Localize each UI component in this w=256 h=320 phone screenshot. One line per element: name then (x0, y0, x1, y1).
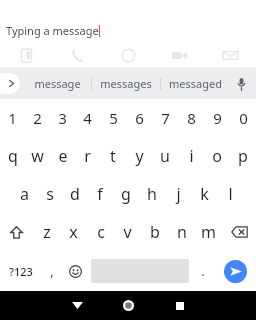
staticText: v (123, 221, 132, 243)
staticText: t (110, 145, 116, 167)
button[interactable]: Back (52, 291, 103, 320)
button[interactable]: t (100, 137, 126, 175)
staticText: p (238, 145, 248, 167)
staticText: Typing a message (6, 23, 99, 38)
button[interactable]: h (139, 175, 165, 213)
button[interactable]: Email (205, 44, 256, 67)
button[interactable]: r (75, 137, 100, 175)
staticText: c (97, 221, 105, 243)
button[interactable]: e (50, 137, 75, 175)
staticText: r (84, 145, 91, 167)
button[interactable]: Send (224, 260, 247, 283)
staticText: , (50, 262, 54, 280)
button[interactable]: Shift (0, 213, 33, 251)
button[interactable]: messaged (161, 68, 229, 99)
staticText: d (70, 183, 80, 205)
staticText: 6 (135, 108, 144, 128)
staticText: messages (100, 76, 152, 91)
button[interactable]: messages (92, 68, 160, 99)
staticText: messaged (169, 76, 222, 91)
button[interactable]: v (114, 213, 141, 251)
button[interactable]: n (168, 213, 195, 251)
staticText: message (34, 76, 81, 91)
staticText: z (43, 221, 51, 243)
button[interactable]: z (33, 213, 60, 251)
button[interactable]: Home (103, 291, 154, 320)
button[interactable]: . (192, 251, 214, 291)
staticText: s (46, 183, 54, 205)
staticText: x (69, 221, 78, 243)
staticText: f (97, 183, 103, 205)
button[interactable]: Call (52, 44, 103, 67)
button[interactable]: k (191, 175, 217, 213)
staticText: n (177, 221, 187, 243)
button[interactable]: m (195, 213, 222, 251)
button[interactable]: p (230, 137, 256, 175)
button[interactable]: 9 (204, 99, 230, 137)
button[interactable]: u (152, 137, 178, 175)
staticText: y (135, 145, 144, 167)
staticText: 8 (187, 108, 196, 128)
staticText: k (200, 183, 209, 205)
staticText: 2 (33, 108, 42, 128)
staticText: a (20, 183, 29, 205)
staticText: o (212, 145, 222, 167)
button[interactable]: o (204, 137, 230, 175)
button[interactable]: 3 (50, 99, 75, 137)
staticText: l (228, 183, 233, 205)
staticText: 4 (83, 108, 92, 128)
button[interactable]: Voice input (229, 68, 253, 99)
button[interactable]: f (87, 175, 113, 213)
staticText: 1 (8, 108, 17, 128)
button[interactable]: b (141, 213, 168, 251)
staticText: 7 (161, 108, 170, 128)
button[interactable]: 2 (25, 99, 50, 137)
button[interactable]: s (37, 175, 62, 213)
button[interactable]: g (113, 175, 139, 213)
staticText: j (176, 183, 181, 205)
button[interactable]: Recent apps (154, 291, 205, 320)
button[interactable]: 4 (75, 99, 100, 137)
button[interactable]: l (217, 175, 243, 213)
button[interactable]: Backspace (222, 213, 256, 251)
button[interactable]: Contact card (0, 44, 52, 67)
button[interactable]: q (0, 137, 25, 175)
staticText: 0 (239, 108, 248, 128)
staticText: . (201, 262, 205, 280)
button[interactable]: 0 (230, 99, 256, 137)
button[interactable]: ?123 (0, 251, 41, 291)
button[interactable]: 7 (152, 99, 178, 137)
staticText: ?123 (9, 264, 33, 279)
staticText: q (8, 145, 18, 167)
button[interactable]: i (178, 137, 204, 175)
button[interactable]: 1 (0, 99, 25, 137)
staticText: 3 (58, 108, 67, 128)
staticText: w (31, 145, 44, 167)
button[interactable]: x (60, 213, 87, 251)
button[interactable]: c (87, 213, 114, 251)
staticText: h (147, 183, 157, 205)
staticText: u (160, 145, 170, 167)
staticText: g (121, 183, 131, 205)
staticText: 5 (109, 108, 118, 128)
button[interactable]: y (126, 137, 152, 175)
staticText: m (201, 221, 216, 243)
button[interactable]: Expand suggestions (0, 73, 20, 94)
button[interactable]: a (12, 175, 37, 213)
button[interactable]: 6 (126, 99, 152, 137)
button[interactable]: j (165, 175, 191, 213)
button[interactable]: d (62, 175, 87, 213)
button[interactable]: w (25, 137, 50, 175)
staticText: b (150, 221, 160, 243)
button[interactable]: message (24, 68, 91, 99)
button[interactable]: Camera (103, 44, 154, 67)
button[interactable]: , (41, 251, 63, 291)
staticText: i (189, 145, 194, 167)
staticText: e (58, 145, 68, 167)
button[interactable]: Emoji (63, 251, 88, 291)
button[interactable]: 8 (178, 99, 204, 137)
button[interactable]: Video call (154, 44, 205, 67)
staticText: 9 (213, 108, 222, 128)
button[interactable]: 5 (100, 99, 126, 137)
